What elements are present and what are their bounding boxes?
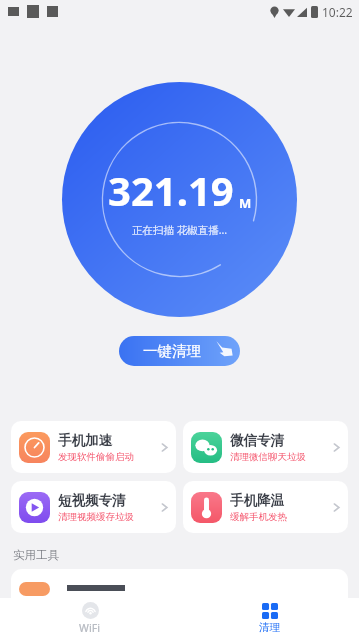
staticText: 正在扫描 花椒直播…	[132, 223, 228, 237]
staticText: 缓解手机发热	[230, 511, 287, 523]
button[interactable]: 手机降温	[183, 481, 348, 533]
staticText: 321.19	[108, 163, 234, 217]
button[interactable]: WiFi	[0, 598, 179, 638]
staticText: M	[239, 194, 252, 212]
staticText: 10:22	[322, 4, 353, 20]
button[interactable]: 微信专清	[183, 421, 348, 473]
staticText: 实用工具	[13, 548, 59, 562]
button[interactable]: 手机加速	[11, 421, 176, 473]
staticText: WiFi	[79, 621, 101, 635]
staticText: 一键清理	[143, 342, 201, 360]
staticText: 短视频专清	[58, 492, 126, 509]
button[interactable]: 清理	[179, 598, 359, 638]
staticText: 手机降温	[230, 492, 284, 509]
staticText: 微信专清	[230, 432, 284, 449]
staticText: 手机加速	[58, 432, 112, 449]
button[interactable]	[11, 569, 348, 609]
staticText: 清理微信聊天垃圾	[230, 451, 306, 463]
staticText: 清理	[259, 621, 280, 634]
staticText: 清理视频缓存垃圾	[58, 511, 134, 523]
button[interactable]: 短视频专清	[11, 481, 176, 533]
staticText: 发现软件偷偷启动	[58, 451, 134, 463]
button[interactable]: 一键清理	[119, 336, 240, 366]
